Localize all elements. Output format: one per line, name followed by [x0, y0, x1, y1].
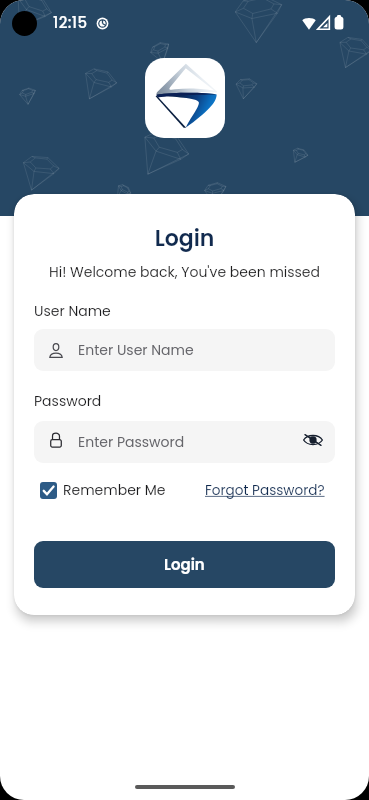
- button[interactable]: Forgot Password?: [205, 481, 325, 500]
- button[interactable]: Enter User Name: [34, 329, 335, 371]
- staticText: User Name: [34, 301, 111, 321]
- other: Wi-Fi: [302, 16, 316, 30]
- other: Battery: [334, 15, 344, 30]
- button[interactable]: Enter Password: [34, 421, 335, 463]
- other: Alarm set: [96, 17, 109, 30]
- button[interactable]: Show password: [294, 425, 328, 459]
- staticText: Login: [14, 223, 355, 254]
- button[interactable]: Login: [34, 541, 335, 588]
- other: Mobile signal: [317, 16, 330, 30]
- staticText: Enter User Name: [78, 340, 194, 360]
- staticText: 12:15: [53, 12, 88, 33]
- staticText: Remember Me: [63, 480, 166, 500]
- staticText: Password: [34, 391, 102, 411]
- staticText: Hi! Welcome back, You've been missed: [14, 262, 355, 282]
- staticText: Login: [164, 554, 205, 575]
- button[interactable]: Remember Me: [40, 480, 166, 500]
- staticText: Enter Password: [78, 432, 185, 452]
